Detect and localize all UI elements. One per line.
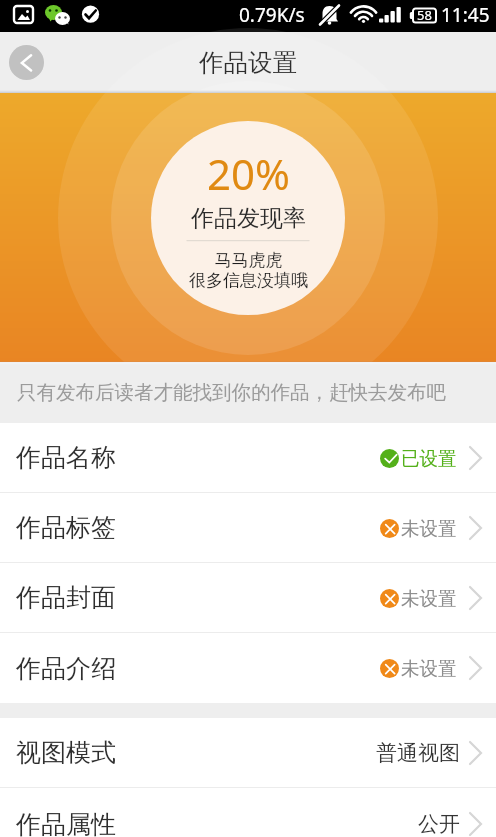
- staticText: 未设置: [401, 517, 457, 540]
- staticText: 作品标签: [16, 512, 116, 543]
- button[interactable]: 作品名称: [0, 423, 496, 493]
- staticText: 作品封面: [16, 582, 116, 613]
- staticText: 未设置: [401, 657, 457, 680]
- staticText: 作品发现率: [191, 204, 306, 233]
- staticText: 已设置: [401, 447, 457, 470]
- button[interactable]: 作品属性: [0, 788, 496, 837]
- staticText: 作品设置: [199, 47, 297, 78]
- staticText: 马马虎虎 很多信息没填哦: [189, 250, 308, 291]
- staticText: 58: [417, 6, 432, 24]
- staticText: 0.79K/s: [239, 2, 305, 28]
- button[interactable]: 作品标签: [0, 493, 496, 563]
- staticText: 公开: [418, 811, 460, 837]
- staticText: 11:45: [441, 2, 490, 28]
- staticText: 20%: [207, 145, 290, 202]
- staticText: 只有发布后读者才能找到你的作品，赶快去发布吧: [17, 380, 446, 405]
- staticText: 视图模式: [16, 737, 116, 768]
- staticText: 作品名称: [16, 442, 116, 473]
- staticText: 未设置: [401, 587, 457, 610]
- button[interactable]: 视图模式: [0, 718, 496, 788]
- button[interactable]: 作品介绍: [0, 633, 496, 703]
- staticText: 作品介绍: [16, 653, 116, 684]
- button[interactable]: Back: [9, 45, 44, 80]
- staticText: 普通视图: [376, 740, 460, 766]
- button[interactable]: 作品封面: [0, 563, 496, 633]
- staticText: 作品属性: [16, 809, 116, 837]
